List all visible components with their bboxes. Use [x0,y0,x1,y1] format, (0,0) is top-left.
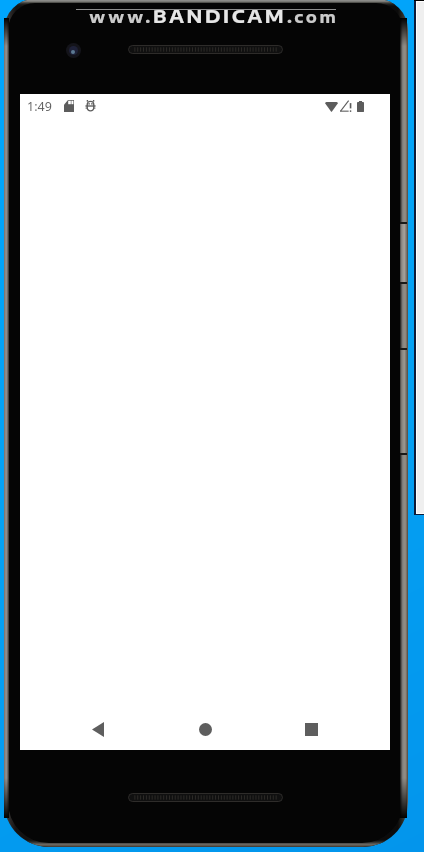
button[interactable]: Back [79,710,117,748]
staticText: 1:49 [27,98,52,115]
staticText: www. [89,7,153,27]
button[interactable]: Recent apps [292,710,330,748]
staticText: BANDICAM [153,4,287,27]
staticText: .com [287,7,339,27]
button[interactable]: Home [186,710,224,748]
